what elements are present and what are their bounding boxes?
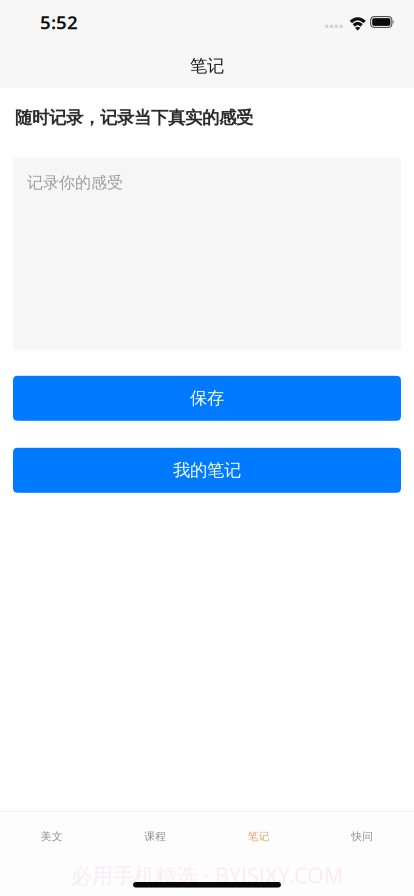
staticText: 我的笔记 <box>173 460 241 481</box>
staticText: 必用手机精选 · BYJSJXY.COM <box>71 861 343 889</box>
staticText: 保存 <box>190 388 224 409</box>
staticText: 课程 <box>144 830 166 843</box>
staticText: 美文 <box>41 830 63 843</box>
button[interactable]: 课程 <box>103 812 207 861</box>
staticText: 记录你的感受 <box>27 173 123 192</box>
staticText: 5:52 <box>40 10 78 34</box>
button[interactable]: 笔记 <box>207 812 310 861</box>
staticText: 笔记 <box>248 830 270 843</box>
button[interactable]: 美文 <box>0 812 103 861</box>
button[interactable]: 我的笔记 <box>13 448 401 493</box>
staticText: 快问 <box>351 830 373 843</box>
button[interactable]: 记录你的感受 <box>13 158 401 350</box>
button[interactable]: 保存 <box>13 376 401 421</box>
staticText: 笔记 <box>190 55 224 77</box>
staticText: 随时记录，记录当下真实的感受 <box>15 107 253 128</box>
button[interactable]: 快问 <box>310 812 414 861</box>
